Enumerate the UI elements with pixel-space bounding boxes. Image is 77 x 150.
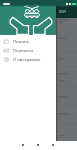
staticText: Платежи (59, 1, 77, 15)
staticText: Подписки (13, 48, 34, 54)
button[interactable]: Подписки (0, 46, 56, 55)
button[interactable]: О программе (0, 55, 56, 64)
staticText: Платить (13, 39, 30, 45)
button[interactable]: Платить (0, 37, 56, 46)
staticText: О программе (13, 57, 41, 63)
